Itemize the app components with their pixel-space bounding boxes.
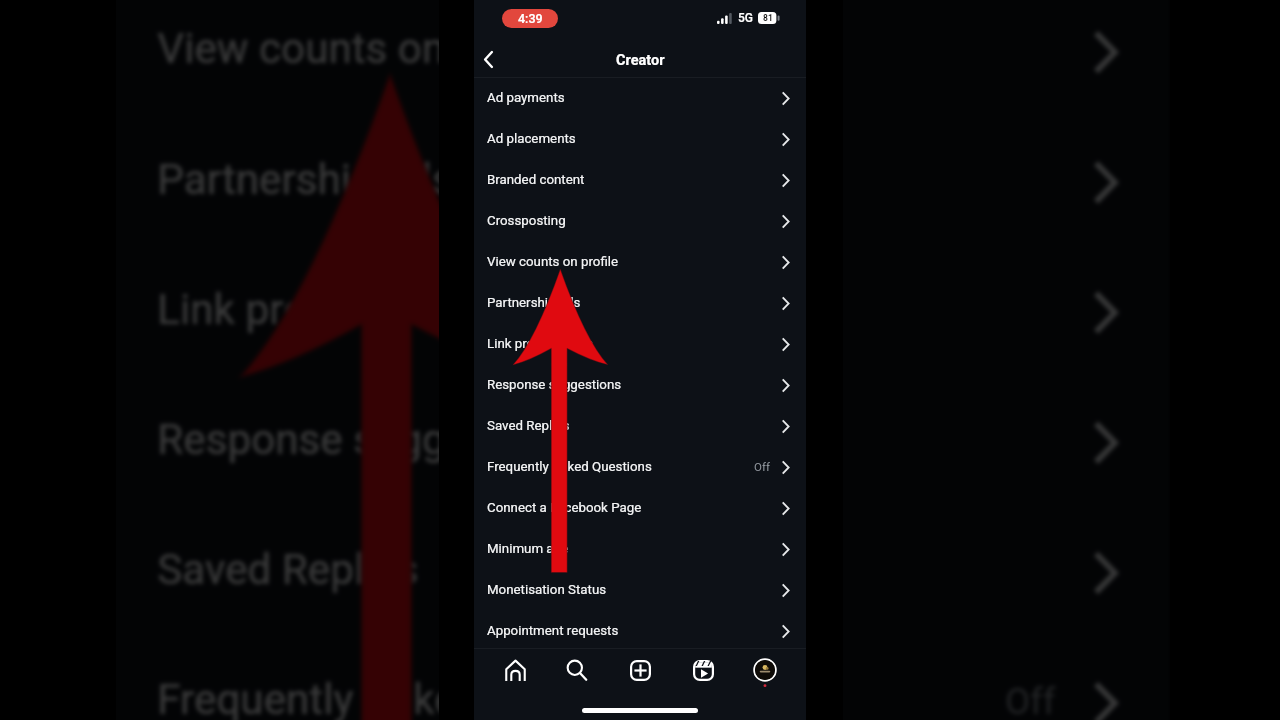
staticText: Saved Replies — [157, 546, 1078, 597]
staticText: Response suggestions — [487, 377, 777, 393]
staticText: Response suggestions — [157, 416, 1078, 467]
button[interactable]: Ad placements — [474, 119, 806, 160]
staticText: Creator — [616, 52, 665, 69]
staticText: Appointment requests — [487, 623, 777, 639]
staticText: View counts on profile — [157, 25, 1078, 76]
button[interactable]: Reels — [681, 648, 725, 692]
staticText: Monetisation Status — [487, 582, 777, 598]
staticText: 81 — [763, 13, 773, 23]
button[interactable]: Appointment requests — [474, 611, 806, 652]
staticText: View counts on profile — [487, 254, 777, 270]
staticText: 5G — [738, 11, 753, 25]
button[interactable]: Partnership ads — [474, 283, 806, 324]
staticText: Connect a Facebook Page — [487, 500, 777, 516]
button[interactable]: Monetisation Status — [474, 570, 806, 611]
staticText: Crossposting — [487, 213, 777, 229]
staticText: 4:39 — [518, 11, 543, 26]
staticText: Saved Replies — [487, 418, 777, 434]
staticText: Link promo shops — [157, 286, 1078, 336]
button[interactable]: Frequently Asked Questions — [474, 447, 806, 488]
staticText: Frequently Asked Questions — [157, 676, 1005, 720]
staticText: Frequently Asked Questions — [487, 459, 754, 475]
staticText: Partnership ads — [157, 155, 1078, 206]
staticText: Link promo shops — [487, 336, 777, 352]
button[interactable]: View counts on profile — [474, 242, 806, 283]
button[interactable]: Response suggestions — [474, 365, 806, 406]
button[interactable]: Profile — [743, 648, 787, 692]
button[interactable]: Saved Replies — [474, 406, 806, 447]
button[interactable]: Home — [493, 648, 537, 692]
staticText: Off — [1005, 679, 1056, 720]
button[interactable]: Minimum age — [474, 529, 806, 570]
button[interactable]: Search — [555, 648, 599, 692]
button[interactable]: Link promo shops — [474, 324, 806, 365]
button[interactable]: Ad payments — [474, 78, 806, 119]
button[interactable]: Connect a Facebook Page — [474, 488, 806, 529]
staticText: Ad payments — [487, 90, 777, 106]
button[interactable]: Branded content — [474, 160, 806, 201]
staticText: Off — [754, 460, 770, 473]
staticText: Ad placements — [487, 131, 777, 147]
button[interactable]: Create — [618, 648, 662, 692]
button[interactable]: Back — [471, 42, 505, 76]
button[interactable]: Crossposting — [474, 201, 806, 242]
staticText: Minimum age — [487, 541, 777, 557]
staticText: Partnership ads — [487, 295, 777, 311]
staticText: Branded content — [487, 172, 777, 188]
